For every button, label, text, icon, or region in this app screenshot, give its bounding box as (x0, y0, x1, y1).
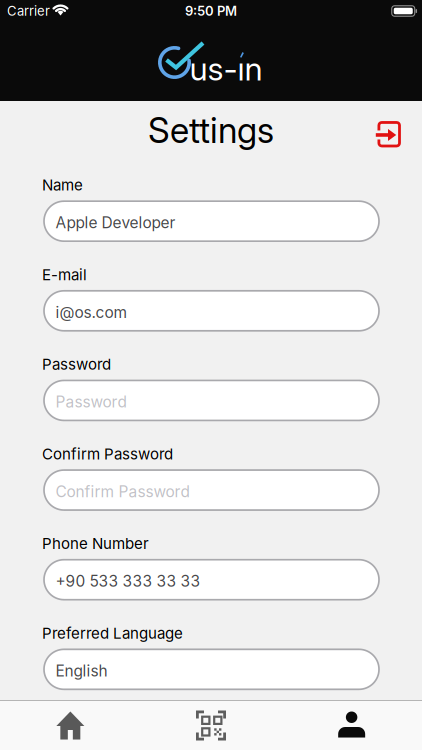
button[interactable]: Scan QR Code (141, 701, 281, 750)
staticText: Confirm Password (55, 481, 189, 499)
staticText: Preferred Language (42, 624, 183, 642)
staticText: English (55, 660, 107, 679)
textField[interactable]: i@os.com (55, 301, 379, 320)
textField[interactable]: Apple Developer (55, 212, 379, 230)
staticText: Carrier (7, 3, 50, 19)
button[interactable]: Profile (281, 701, 422, 750)
secureTextField[interactable]: Confirm Password (55, 481, 379, 499)
staticText: Phone Number (42, 534, 149, 553)
staticText: E-mail (42, 266, 87, 284)
button[interactable]: Log out (375, 120, 401, 148)
staticText: 9:50 PM (185, 3, 237, 19)
staticText: +90 533 333 33 33 (55, 570, 200, 589)
staticText: Apple Developer (55, 212, 175, 230)
staticText: Name (42, 176, 83, 194)
textField[interactable]: +90 533 333 33 33 (55, 570, 379, 589)
textField[interactable]: English (55, 660, 379, 679)
staticText: Password (55, 391, 126, 410)
staticText: us-in (189, 49, 262, 88)
button[interactable]: Home (0, 701, 141, 750)
staticText: Confirm Password (42, 445, 173, 463)
staticText: i@os.com (55, 301, 127, 320)
secureTextField[interactable]: Password (55, 391, 379, 410)
staticText: Password (42, 355, 111, 373)
staticText: Settings (148, 109, 274, 151)
